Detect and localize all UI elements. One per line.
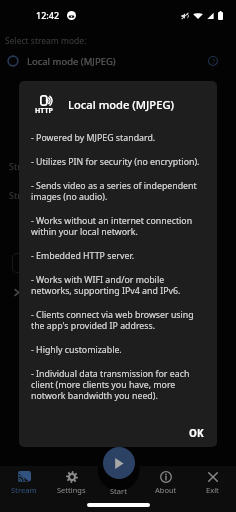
button[interactable]: Local mode (MJPEG) — [0, 50, 236, 72]
staticText: Select stream mode: — [5, 35, 87, 47]
staticText: - Works with WIFI and/or mobile networks… — [31, 274, 204, 297]
staticText: - Works without an internet connection w… — [31, 215, 204, 238]
staticText: - Highly customizable. — [31, 344, 122, 356]
staticText: About — [155, 485, 177, 495]
staticText: - Embedded HTTP server. — [31, 250, 134, 262]
staticText: Start — [110, 486, 127, 496]
staticText: - Sends video as a series of independent… — [31, 180, 204, 203]
staticText: 12:42 — [36, 9, 60, 21]
staticText: Stream — [9, 160, 40, 172]
button[interactable]: Settings — [48, 466, 95, 512]
staticText: Settings — [57, 485, 86, 495]
button[interactable]: Start — [95, 466, 142, 512]
button[interactable]: Start streaming — [103, 447, 135, 479]
staticText: Stream — [9, 189, 40, 201]
button[interactable]: Help — [203, 51, 223, 71]
staticText: - Utilizes PIN for security (no encrypti… — [31, 156, 200, 168]
staticText: Local mode (MJPEG) — [27, 55, 116, 68]
staticText: HTTP — [35, 106, 53, 116]
staticText: - Powered by MJPEG standard. — [31, 132, 156, 144]
staticText: Local mode (MJPEG) — [68, 97, 175, 112]
button[interactable]: Exit — [189, 466, 236, 512]
staticText: - Individual data transmission for each … — [31, 368, 204, 402]
staticText: Exit — [206, 485, 219, 495]
staticText: Stream — [11, 485, 37, 495]
button[interactable]: Stream — [0, 466, 48, 512]
staticText: OK — [189, 426, 204, 440]
staticText: ? — [212, 57, 215, 66]
button[interactable]: About — [142, 466, 189, 512]
staticText: - Clients connect via web browser using … — [31, 309, 204, 332]
button[interactable]: OK — [183, 423, 210, 443]
